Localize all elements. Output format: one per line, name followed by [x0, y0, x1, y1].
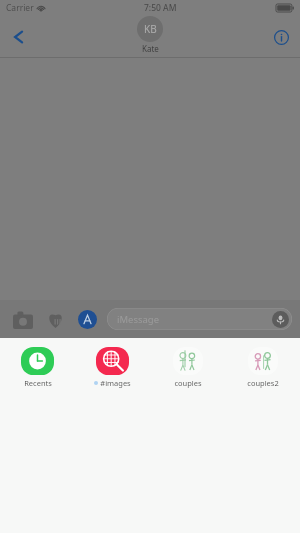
- staticText: Carrier: [6, 2, 34, 14]
- button[interactable]: iMessage: [107, 308, 292, 330]
- button[interactable]: #images: [75, 338, 150, 396]
- staticText: #images: [100, 378, 131, 388]
- button[interactable]: Details: [268, 24, 294, 50]
- staticText: Kate: [142, 43, 159, 54]
- button[interactable]: couples2: [225, 338, 300, 396]
- staticText: iMessage: [117, 313, 160, 326]
- staticText: 7:50 AM: [144, 2, 177, 14]
- button[interactable]: Back: [4, 22, 34, 52]
- button[interactable]: couples: [150, 338, 225, 396]
- button[interactable]: Camera: [10, 306, 36, 332]
- button[interactable]: Digital Touch: [42, 306, 68, 332]
- button[interactable]: App Store: [74, 306, 100, 332]
- button[interactable]: Recents: [0, 338, 75, 396]
- staticText: KB: [144, 22, 157, 36]
- button[interactable]: Dictate: [272, 311, 289, 328]
- staticText: couples2: [247, 378, 279, 388]
- button[interactable]: KB: [137, 16, 163, 54]
- staticText: couples: [174, 378, 202, 388]
- staticText: Recents: [24, 378, 52, 388]
